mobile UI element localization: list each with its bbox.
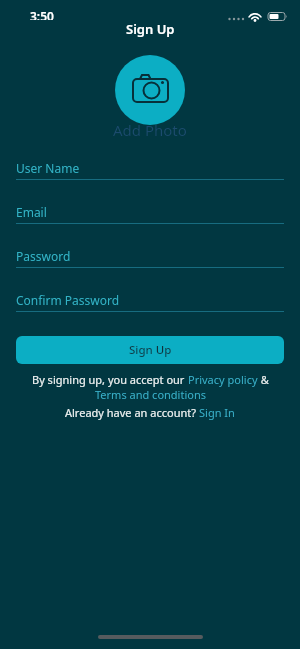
staticText: Confirm Password (16, 292, 120, 308)
staticText: User Name (16, 160, 80, 176)
button[interactable]: Terms and conditions (95, 387, 206, 402)
staticText: Sign Up (129, 342, 172, 358)
button[interactable]: Privacy policy (188, 372, 258, 387)
staticText: Password (16, 248, 71, 264)
staticText: & (258, 372, 269, 387)
staticText: By signing up, you accept our (32, 372, 188, 387)
staticText: 3:50 (30, 8, 54, 20)
staticText: Email (16, 204, 47, 220)
staticText: Sign Up (126, 20, 175, 38)
button[interactable]: Add Photo (113, 120, 187, 140)
button[interactable] (115, 55, 185, 125)
button[interactable]: Sign In (199, 405, 235, 420)
staticText: Already have an account? (65, 405, 199, 420)
button[interactable]: Sign Up (16, 336, 284, 364)
